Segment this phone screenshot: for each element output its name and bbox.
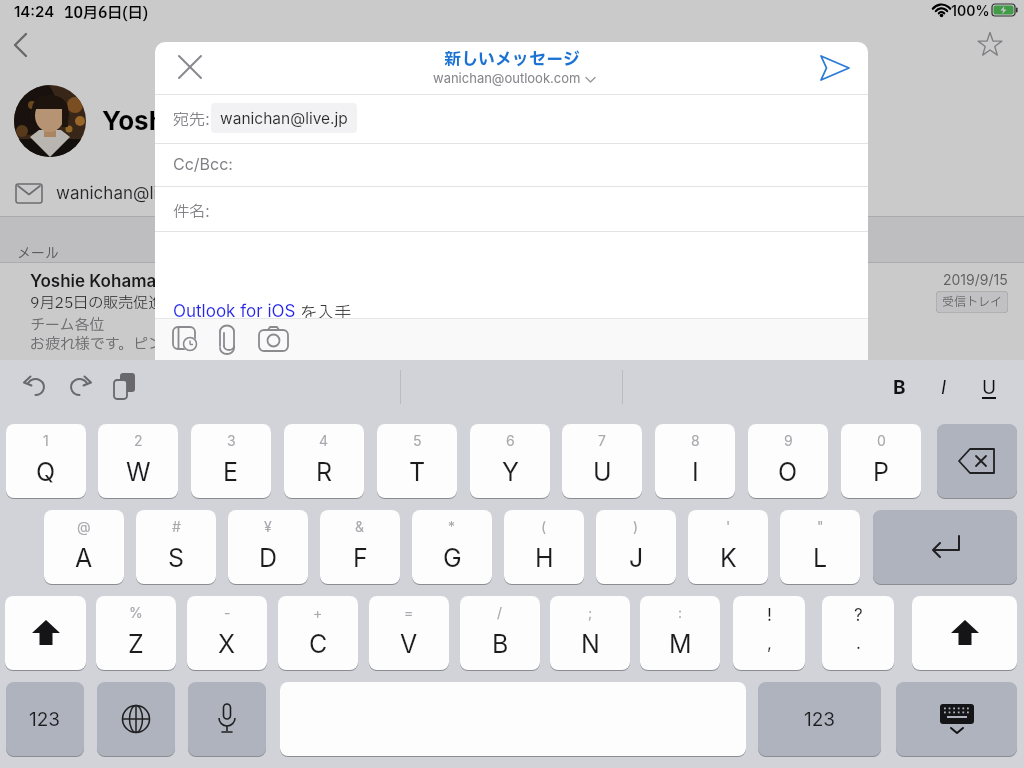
button[interactable] <box>112 373 138 401</box>
staticText: & <box>355 518 365 535</box>
staticText: I <box>941 376 947 399</box>
staticText: 受信トレイ <box>942 293 1003 311</box>
staticText: Cc/Bcc: <box>173 154 233 173</box>
button[interactable]: 1 <box>6 424 86 498</box>
staticText: ¥ <box>264 518 272 535</box>
staticText: wanichan@live.jp <box>220 109 348 128</box>
button[interactable] <box>188 682 266 756</box>
staticText: X <box>218 629 236 659</box>
staticText: 1 <box>43 432 49 449</box>
staticText: C <box>309 629 328 659</box>
button[interactable] <box>873 510 1017 584</box>
button[interactable]: 8 <box>655 424 735 498</box>
staticText: 9 <box>784 432 793 449</box>
button[interactable]: " <box>780 510 860 584</box>
staticText: Y <box>502 457 519 487</box>
button[interactable]: 123 <box>6 682 84 756</box>
button[interactable] <box>23 376 48 397</box>
staticText: 2019/9/15 <box>943 271 1008 288</box>
staticText: 100% <box>951 2 990 19</box>
button[interactable]: 3 <box>191 424 271 498</box>
button[interactable] <box>67 376 92 397</box>
staticText: 14:24 <box>14 2 55 20</box>
button[interactable]: ? <box>822 596 894 670</box>
staticText: Q <box>36 457 56 487</box>
button[interactable]: ' <box>688 510 768 584</box>
staticText: ) <box>633 518 639 535</box>
button[interactable] <box>12 32 30 58</box>
button[interactable]: @ <box>44 510 124 584</box>
button[interactable] <box>5 596 86 670</box>
button[interactable]: 5 <box>377 424 457 498</box>
staticText: wanichan@outlook.com <box>433 70 581 86</box>
staticText: 新しいメッセージ <box>444 47 580 72</box>
staticText: R <box>316 457 333 487</box>
staticText: E <box>223 457 239 487</box>
button[interactable]: ; <box>550 596 630 670</box>
staticText: " <box>817 518 824 535</box>
staticText: T <box>409 457 426 487</box>
button[interactable]: - <box>187 596 267 670</box>
staticText: 件名: <box>173 200 210 224</box>
button[interactable] <box>896 682 1017 756</box>
staticText: + <box>313 604 323 621</box>
staticText: ? <box>854 605 863 626</box>
button[interactable]: ) <box>596 510 676 584</box>
button[interactable]: & <box>320 510 400 584</box>
button[interactable]: ¥ <box>228 510 308 584</box>
staticText: K <box>720 543 737 573</box>
staticText: Yoshie Kohama <box>102 105 298 136</box>
staticText: 6 <box>506 432 515 449</box>
staticText: % <box>129 604 143 621</box>
staticText: G <box>443 543 462 573</box>
button[interactable] <box>172 325 200 353</box>
staticText: = <box>404 604 414 621</box>
button[interactable]: 0 <box>841 424 921 498</box>
button[interactable] <box>217 324 239 354</box>
button[interactable]: wanichan@live.jp <box>211 103 357 133</box>
staticText: wanichan@live.jp <box>56 183 197 204</box>
button[interactable]: 6 <box>470 424 550 498</box>
button[interactable] <box>0 263 1024 358</box>
button[interactable] <box>977 31 1005 59</box>
staticText: L <box>813 543 828 573</box>
staticText: チーム各位 <box>30 314 105 336</box>
button[interactable]: = <box>369 596 449 670</box>
button[interactable] <box>179 56 201 78</box>
button[interactable]: % <box>96 596 176 670</box>
staticText: Outlook for iOS <box>173 301 296 322</box>
button[interactable]: + <box>278 596 358 670</box>
button[interactable]: 4 <box>284 424 364 498</box>
staticText: 5 <box>413 432 422 449</box>
staticText: . <box>856 633 861 654</box>
button[interactable] <box>819 54 851 82</box>
button[interactable]: 123 <box>758 682 881 756</box>
button[interactable]: * <box>412 510 492 584</box>
button[interactable]: ! <box>733 596 805 670</box>
staticText: ( <box>541 518 547 535</box>
button[interactable] <box>937 424 1017 498</box>
button[interactable] <box>912 596 1017 670</box>
staticText: 10月6日(日) <box>64 2 148 24</box>
staticText: 123 <box>29 708 61 731</box>
button[interactable] <box>259 327 289 351</box>
staticText: J <box>629 543 644 573</box>
button[interactable]: : <box>640 596 720 670</box>
staticText: 4 <box>319 432 329 449</box>
staticText: ; <box>588 604 593 621</box>
staticText: N <box>581 629 600 659</box>
button[interactable]: ( <box>504 510 584 584</box>
staticText: 2 <box>134 432 143 449</box>
staticText: Yoshie Kohama <box>30 271 157 292</box>
button[interactable]: 7 <box>562 424 642 498</box>
button[interactable]: 2 <box>98 424 178 498</box>
staticText: 7 <box>598 432 606 449</box>
button[interactable]: / <box>460 596 540 670</box>
staticText: S <box>168 543 185 573</box>
button[interactable]: # <box>136 510 216 584</box>
staticText: F <box>353 543 368 573</box>
button[interactable] <box>97 682 175 756</box>
button[interactable]: 9 <box>748 424 828 498</box>
staticText: を入手 <box>296 301 352 326</box>
